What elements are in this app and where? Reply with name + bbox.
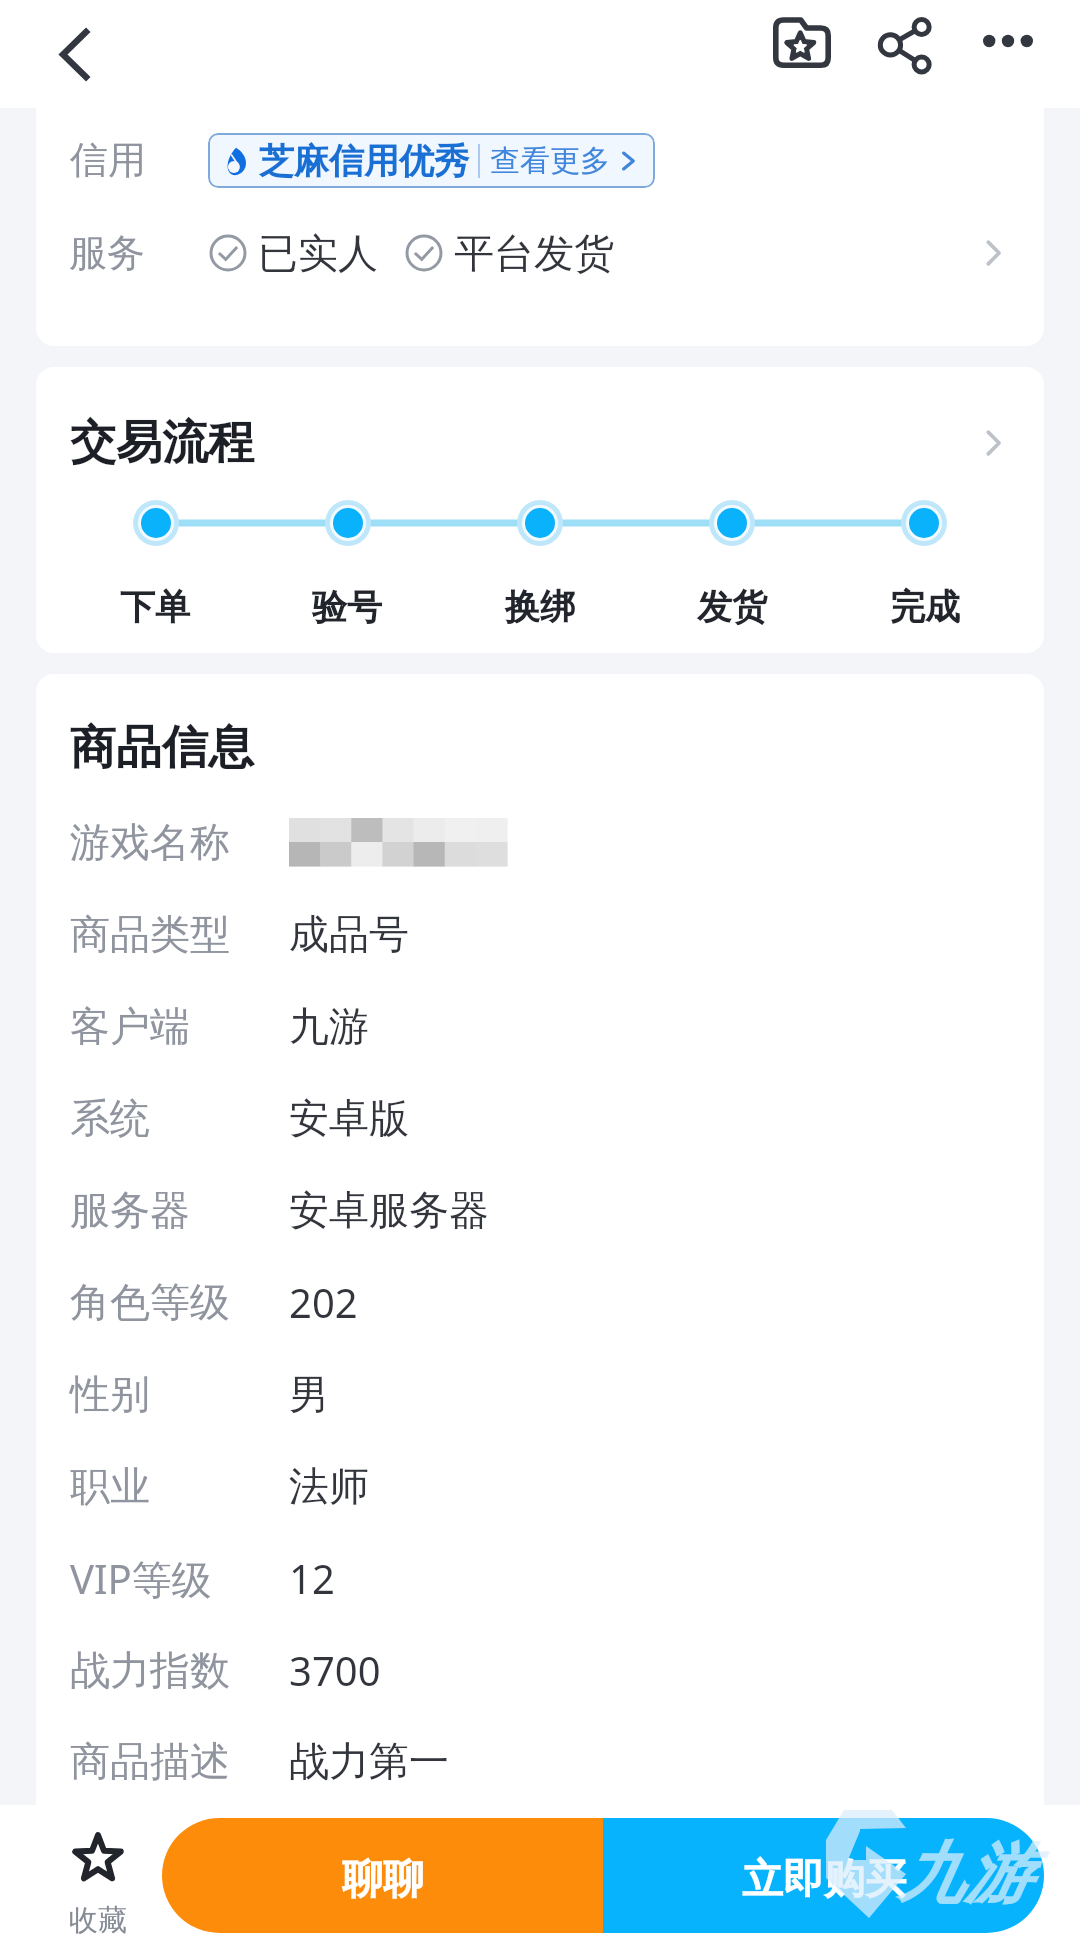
staticText: 3700 xyxy=(289,1643,381,1697)
staticText: 芝麻信用优秀 xyxy=(259,139,469,183)
button[interactable]: 立即购买 xyxy=(603,1818,1044,1933)
staticText: 信用 xyxy=(70,136,146,184)
staticText: 服务 xyxy=(69,229,145,277)
staticText: 验号 xyxy=(312,585,382,629)
staticText: 平台发货 xyxy=(454,228,614,278)
staticText: 商品描述 xyxy=(70,1736,230,1786)
staticText: 下单 xyxy=(120,585,190,629)
staticText: 安卓服务器 xyxy=(289,1185,489,1235)
staticText: 游戏名称 xyxy=(70,817,230,867)
button[interactable]: Collection folder xyxy=(757,6,847,76)
staticText: 系统 xyxy=(70,1093,150,1143)
staticText: 战力第一 xyxy=(289,1736,449,1786)
staticText: 查看更多 xyxy=(490,142,610,180)
staticText: 男 xyxy=(289,1369,329,1419)
staticText: 服务器 xyxy=(70,1185,190,1235)
staticText: 发货 xyxy=(697,585,767,629)
staticText: 交易流程 xyxy=(70,414,254,472)
staticText: 职业 xyxy=(70,1461,150,1511)
button[interactable]: More options xyxy=(965,6,1051,76)
staticText: 九游 xyxy=(897,1832,1031,1915)
staticText: 聊聊 xyxy=(342,1854,424,1906)
staticText: VIP等级 xyxy=(70,1551,212,1606)
button[interactable]: 芝麻信用优秀 xyxy=(208,133,655,188)
staticText: 完成 xyxy=(890,585,960,629)
staticText: 202 xyxy=(289,1275,358,1329)
staticText: 成品号 xyxy=(289,909,409,959)
staticText: 九游 xyxy=(289,1001,369,1051)
staticText: 换绑 xyxy=(505,585,575,629)
staticText: 立即购买 xyxy=(742,1854,906,1906)
button[interactable]: 聊聊 xyxy=(162,1818,603,1933)
staticText: 性别 xyxy=(70,1369,150,1419)
button[interactable]: Back xyxy=(28,10,120,98)
staticText: 法师 xyxy=(289,1461,369,1511)
button[interactable]: 交易流程 xyxy=(36,367,1044,653)
button[interactable]: 服务 xyxy=(36,206,1044,300)
staticText: 收藏 xyxy=(69,1902,127,1939)
button[interactable]: 收藏 xyxy=(0,1805,162,1945)
staticText: 商品信息 xyxy=(70,719,254,777)
staticText: 战力指数 xyxy=(70,1645,230,1695)
staticText: 客户端 xyxy=(70,1001,190,1051)
staticText: 商品类型 xyxy=(70,909,230,959)
staticText: 角色等级 xyxy=(70,1277,230,1327)
button[interactable]: Share xyxy=(865,5,945,77)
staticText: 已实人 xyxy=(258,228,378,278)
staticText: 12 xyxy=(289,1551,335,1605)
staticText: 安卓版 xyxy=(289,1093,409,1143)
